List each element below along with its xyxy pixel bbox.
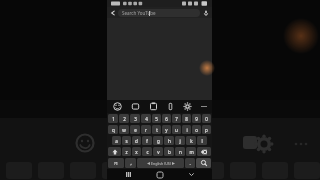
staticText: , bbox=[130, 160, 132, 166]
staticText: z bbox=[125, 149, 128, 155]
staticText: 2 bbox=[123, 116, 126, 122]
staticText: e bbox=[134, 127, 137, 133]
button[interactable]: 5 bbox=[152, 114, 161, 123]
button[interactable]: 2 bbox=[119, 114, 129, 123]
staticText: i bbox=[186, 127, 188, 133]
button[interactable]: p bbox=[202, 125, 211, 134]
button[interactable]: i bbox=[182, 125, 191, 134]
button[interactable]: 9 bbox=[192, 114, 201, 123]
button[interactable]: Search bbox=[196, 158, 211, 168]
button[interactable]: e bbox=[130, 125, 140, 134]
staticText: p bbox=[205, 127, 208, 133]
staticText: r bbox=[145, 127, 147, 133]
staticText: y bbox=[165, 127, 168, 133]
staticText: g bbox=[157, 138, 160, 144]
button[interactable]: k bbox=[186, 136, 196, 145]
button[interactable]: j bbox=[175, 136, 185, 145]
staticText: k bbox=[190, 138, 193, 144]
button[interactable]: 4 bbox=[141, 114, 151, 123]
button[interactable]: Settings bbox=[181, 100, 194, 113]
button[interactable]: Recents bbox=[118, 169, 138, 180]
button[interactable]: Shift bbox=[108, 147, 121, 156]
staticText: j bbox=[179, 138, 181, 144]
staticText: Search YouTube bbox=[122, 10, 156, 16]
button[interactable]: Emoji bbox=[111, 100, 124, 113]
button[interactable]: a bbox=[112, 136, 121, 145]
staticText: l bbox=[201, 138, 203, 144]
staticText: a bbox=[115, 138, 118, 144]
button[interactable]: c bbox=[142, 147, 152, 156]
button[interactable]: v bbox=[153, 147, 163, 156]
button[interactable]: b bbox=[164, 147, 174, 156]
button[interactable]: g bbox=[153, 136, 163, 145]
staticText: 3 bbox=[134, 116, 137, 122]
staticText: English (US) bbox=[151, 161, 171, 166]
button[interactable]: f bbox=[142, 136, 152, 145]
staticText: s bbox=[125, 138, 128, 144]
staticText: m bbox=[189, 149, 194, 155]
button[interactable]: 6 bbox=[162, 114, 171, 123]
staticText: 1 bbox=[112, 116, 115, 122]
staticText: b bbox=[168, 149, 171, 155]
staticText: n bbox=[179, 149, 182, 155]
button[interactable]: Clipboard bbox=[147, 100, 160, 113]
staticText: h bbox=[168, 138, 171, 144]
button[interactable]: 7 bbox=[172, 114, 181, 123]
button[interactable]: m bbox=[186, 147, 196, 156]
staticText: q bbox=[112, 127, 115, 133]
button[interactable]: , bbox=[125, 158, 136, 168]
button[interactable]: 1 bbox=[108, 114, 118, 123]
button[interactable]: o bbox=[192, 125, 201, 134]
button[interactable]: t bbox=[152, 125, 161, 134]
staticText: t bbox=[156, 127, 158, 133]
staticText: 4 bbox=[145, 116, 148, 122]
button[interactable]: English (US) bbox=[137, 158, 184, 168]
button[interactable]: z bbox=[122, 147, 131, 156]
button[interactable]: Back bbox=[181, 169, 201, 180]
button[interactable]: 8 bbox=[182, 114, 191, 123]
button[interactable]: 3 bbox=[130, 114, 140, 123]
staticText: u bbox=[175, 127, 178, 133]
staticText: 5 bbox=[155, 116, 158, 122]
staticText: . bbox=[189, 160, 191, 166]
button[interactable]: ?1 bbox=[108, 158, 124, 168]
button[interactable]: 0 bbox=[202, 114, 211, 123]
staticText: w bbox=[122, 127, 126, 133]
staticText: o bbox=[195, 127, 198, 133]
button[interactable]: . bbox=[185, 158, 195, 168]
button[interactable]: Backspace bbox=[197, 147, 211, 156]
staticText: c bbox=[146, 149, 149, 155]
button[interactable]: u bbox=[172, 125, 181, 134]
staticText: v bbox=[157, 149, 160, 155]
button[interactable]: q bbox=[108, 125, 118, 134]
staticText: x bbox=[135, 149, 138, 155]
button[interactable]: n bbox=[175, 147, 185, 156]
button[interactable]: h bbox=[164, 136, 174, 145]
button[interactable]: Translate bbox=[164, 100, 177, 113]
button[interactable]: GIF bbox=[129, 100, 142, 113]
button[interactable]: r bbox=[141, 125, 151, 134]
button[interactable]: Home bbox=[150, 169, 170, 180]
staticText: 9 bbox=[195, 116, 198, 122]
button[interactable]: Hide toolbar bbox=[198, 100, 210, 113]
staticText: 6 bbox=[165, 116, 168, 122]
button[interactable]: l bbox=[197, 136, 207, 145]
button[interactable]: Search YouTube bbox=[118, 9, 200, 17]
staticText: 0 bbox=[205, 116, 208, 122]
staticText: 8 bbox=[185, 116, 188, 122]
button[interactable]: w bbox=[119, 125, 129, 134]
button[interactable]: y bbox=[162, 125, 171, 134]
button[interactable]: s bbox=[122, 136, 131, 145]
staticText: d bbox=[135, 138, 138, 144]
button[interactable]: x bbox=[132, 147, 141, 156]
button[interactable]: d bbox=[132, 136, 141, 145]
staticText: 7 bbox=[175, 116, 178, 122]
staticText: ?1 bbox=[114, 161, 118, 166]
staticText: f bbox=[146, 138, 148, 144]
button[interactable]: Back bbox=[107, 7, 118, 18]
button[interactable]: Voice search bbox=[200, 7, 212, 18]
